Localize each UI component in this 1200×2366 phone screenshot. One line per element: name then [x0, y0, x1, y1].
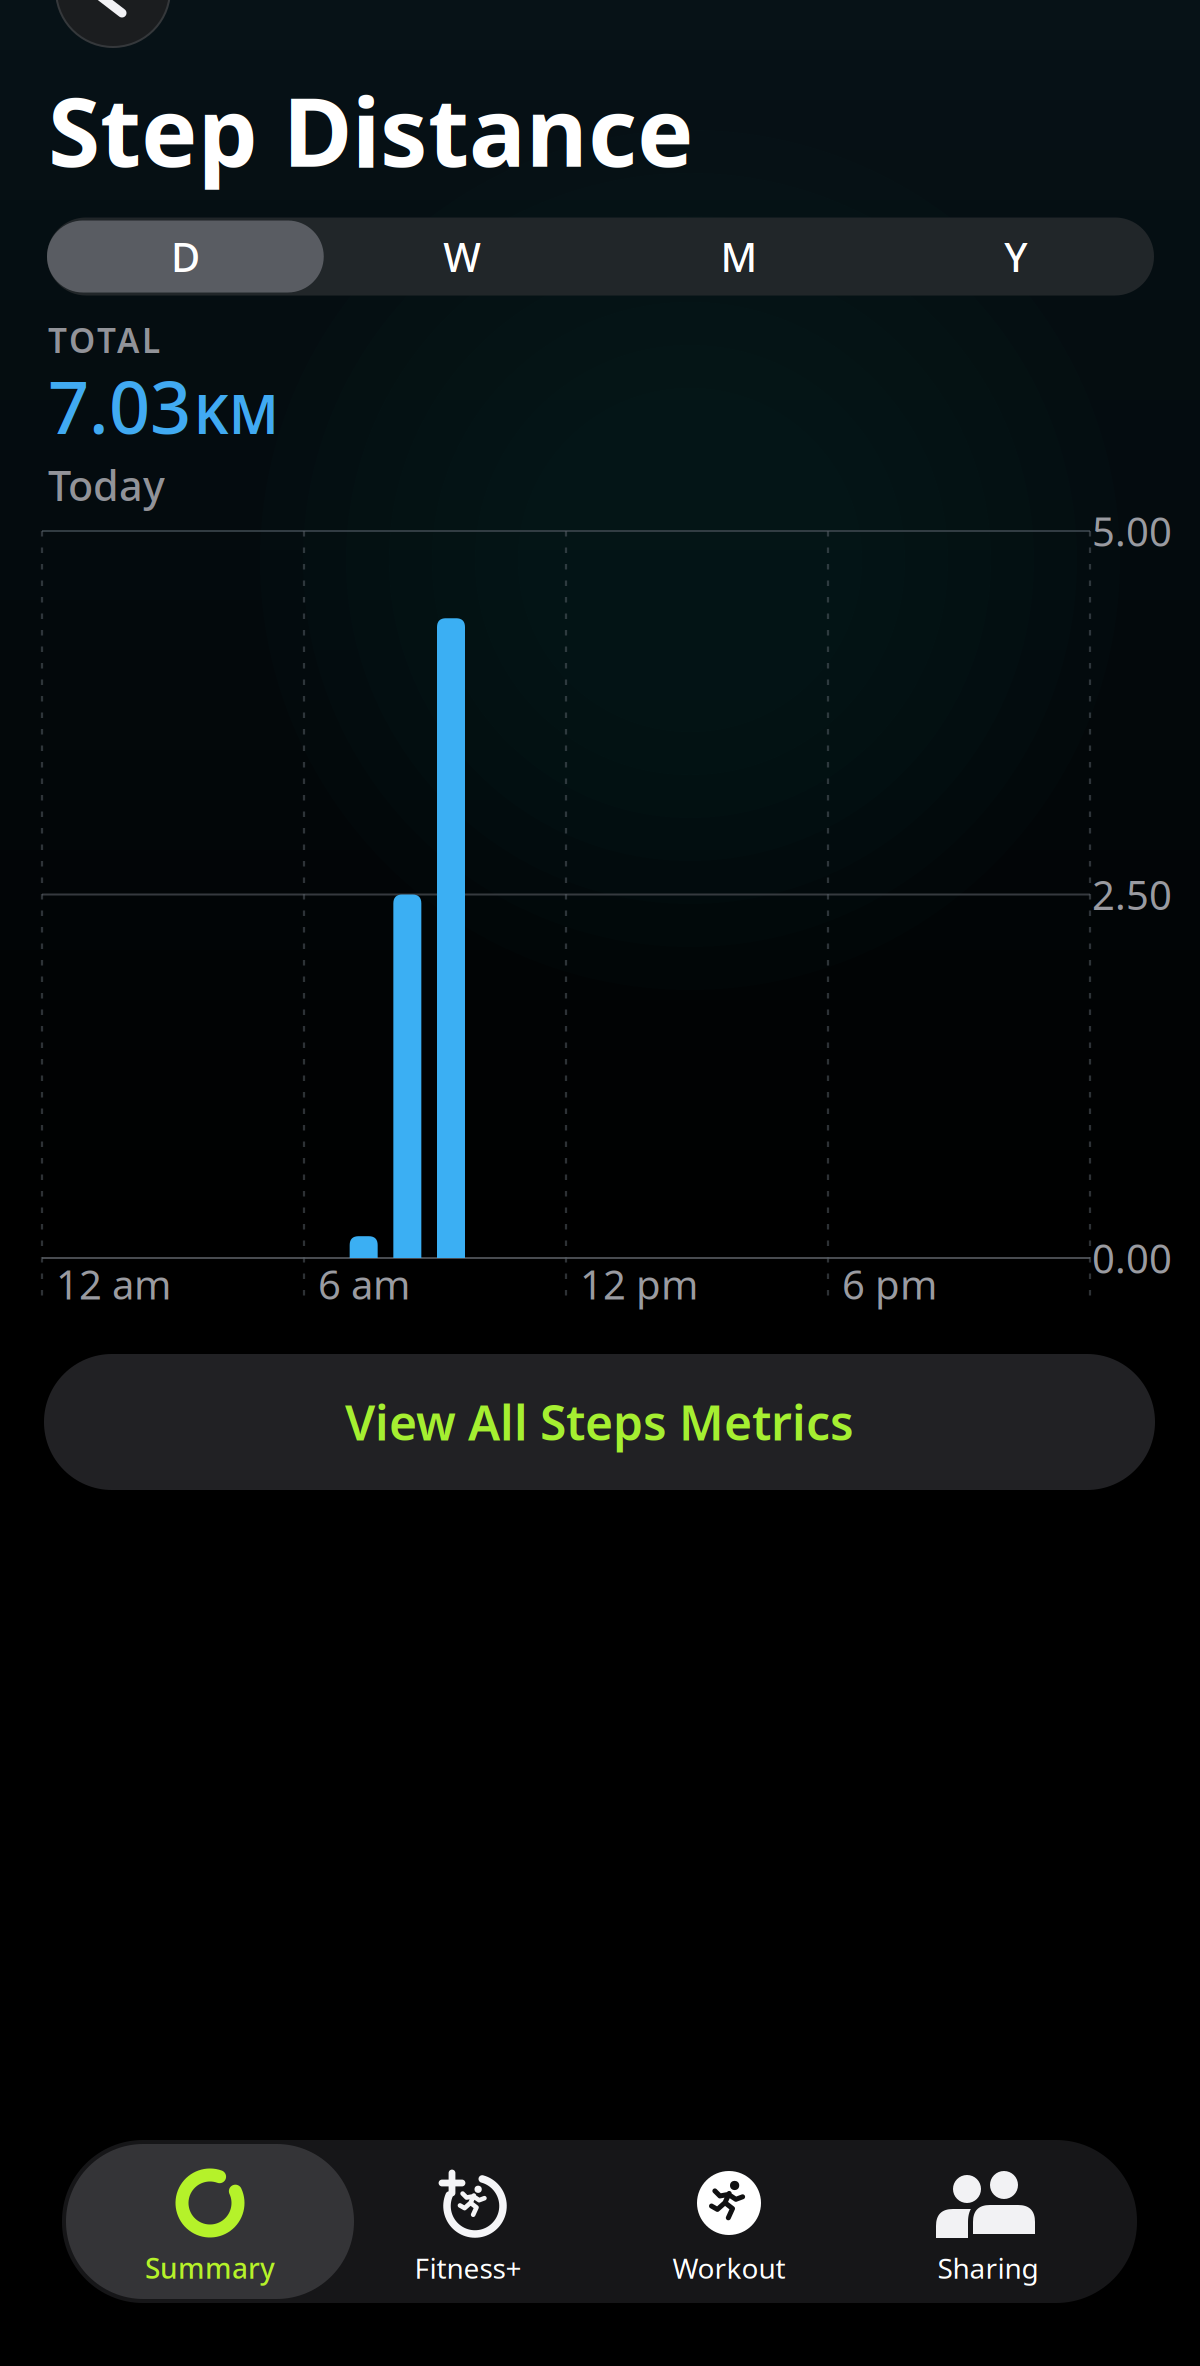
staticText: M	[720, 230, 757, 283]
staticText: Y	[1004, 230, 1027, 283]
staticText: Step Distance	[48, 67, 694, 193]
staticText: View All Steps Metrics	[345, 1390, 854, 1454]
staticText: Sharing	[937, 2249, 1038, 2287]
button[interactable]: W	[324, 217, 601, 295]
button[interactable]: M	[600, 217, 877, 295]
button[interactable]: Summary	[66, 2144, 354, 2299]
staticText: 5.00	[1092, 504, 1172, 557]
staticText: 0.00	[1092, 1231, 1172, 1284]
staticText: Workout	[672, 2249, 785, 2287]
staticText: KM	[194, 378, 279, 449]
staticText: W	[443, 230, 481, 283]
staticText: 6 am	[318, 1257, 410, 1310]
button[interactable]: Workout	[604, 2140, 854, 2303]
staticText: Summary	[145, 2249, 275, 2287]
staticText: 2.50	[1092, 868, 1172, 921]
staticText: 7.03	[48, 358, 191, 454]
button[interactable]: Back	[56, 0, 170, 47]
staticText: Today	[48, 458, 165, 512]
button[interactable]: Fitness+	[343, 2140, 593, 2303]
button[interactable]: Sharing	[863, 2140, 1113, 2303]
staticText: 12 am	[56, 1257, 171, 1310]
button[interactable]: D	[47, 217, 324, 295]
staticText: D	[171, 230, 200, 283]
staticText: 6 pm	[842, 1257, 937, 1310]
button[interactable]: View All Steps Metrics	[44, 1354, 1155, 1490]
button[interactable]: Y	[877, 217, 1154, 295]
staticText: 12 pm	[580, 1257, 698, 1310]
staticText: TOTAL	[48, 318, 160, 362]
staticText: Fitness+	[414, 2249, 521, 2287]
